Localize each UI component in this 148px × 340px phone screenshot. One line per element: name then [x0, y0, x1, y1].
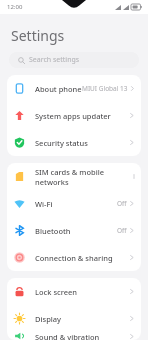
- button[interactable]: Bluetooth: [7, 217, 141, 244]
- staticText: Off: [117, 226, 127, 235]
- staticText: SIM cards & mobile networks: [35, 167, 134, 187]
- button[interactable]: Lock screen: [7, 278, 141, 305]
- button[interactable]: SIM cards & mobile networks: [7, 163, 141, 190]
- staticText: Display: [35, 314, 62, 324]
- button[interactable]: About phone: [7, 75, 141, 102]
- staticText: Security status: [35, 138, 88, 148]
- staticText: Wi-Fi: [35, 199, 53, 209]
- button[interactable]: Connection & sharing: [7, 244, 141, 271]
- staticText: System apps updater: [35, 111, 111, 121]
- staticText: MIUI Global 13: [82, 84, 128, 93]
- button[interactable]: Wi-Fi: [7, 190, 141, 217]
- staticText: Connection & sharing: [35, 253, 113, 263]
- staticText: Search settings: [29, 55, 80, 65]
- button[interactable]: Security status: [7, 129, 141, 156]
- button[interactable]: Display: [7, 305, 141, 332]
- staticText: Off: [117, 199, 127, 208]
- button[interactable]: Sound & vibration: [7, 332, 141, 340]
- staticText: About phone: [35, 84, 82, 94]
- staticText: 12:00: [7, 3, 23, 11]
- button[interactable]: System apps updater: [7, 102, 141, 129]
- staticText: Sound & vibration: [35, 332, 100, 340]
- staticText: Lock screen: [35, 287, 78, 297]
- staticText: Settings: [11, 26, 65, 45]
- staticText: Bluetooth: [35, 226, 71, 236]
- button[interactable]: Search settings: [9, 52, 139, 68]
